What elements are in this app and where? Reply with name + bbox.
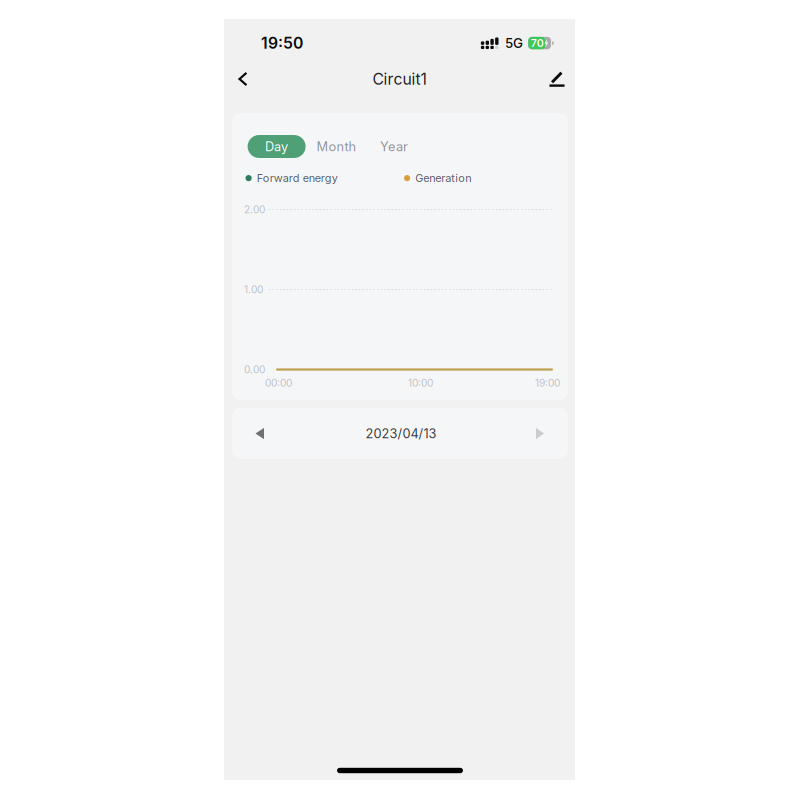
staticText: 2023/04/13	[365, 426, 436, 441]
staticText: Day	[265, 139, 288, 154]
staticText: 70	[531, 37, 544, 49]
staticText: Generation	[415, 171, 471, 185]
staticText: 10:00	[408, 377, 433, 389]
button[interactable]: 2023/04/13	[326, 408, 476, 459]
staticText: 2.00	[244, 203, 265, 216]
button[interactable]: Month	[313, 135, 359, 158]
staticText: 0.00	[244, 363, 265, 376]
staticText: 5G	[505, 35, 523, 51]
staticText: Month	[316, 139, 356, 154]
staticText: 00:00	[265, 377, 292, 389]
button[interactable]: Year	[374, 135, 414, 158]
staticText: Circuit1	[372, 69, 426, 88]
button[interactable]: Next day	[518, 408, 562, 459]
button[interactable]: Day	[248, 135, 306, 158]
staticText: Year	[380, 139, 408, 154]
staticText: Forward energy	[257, 171, 338, 185]
staticText: 1.00	[244, 283, 263, 296]
button[interactable]: Edit	[540, 61, 574, 97]
staticText: 19:50	[261, 33, 303, 52]
button[interactable]: Previous day	[238, 408, 282, 459]
button[interactable]: Back	[226, 61, 260, 97]
staticText: 19:00	[535, 377, 560, 389]
